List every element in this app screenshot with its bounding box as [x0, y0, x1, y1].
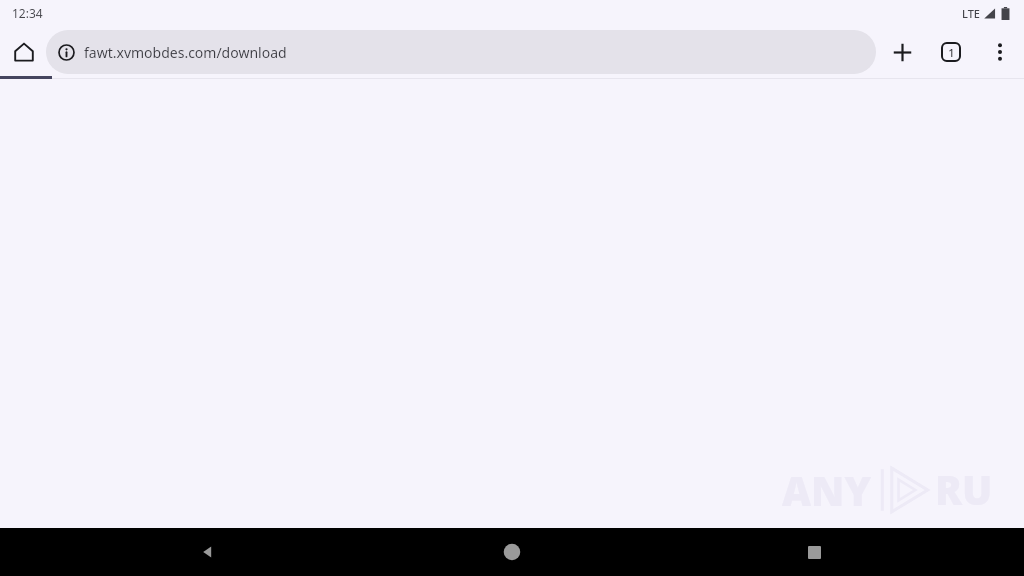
button[interactable]: Home [488, 528, 536, 576]
button[interactable]: More options [980, 32, 1020, 72]
button[interactable]: Recent apps [790, 528, 838, 576]
staticText: RUN [935, 462, 994, 518]
staticText: fawt.xvmobdes.com/download [84, 43, 287, 62]
staticText: 1 [948, 45, 955, 60]
staticText: ANY [782, 463, 871, 517]
staticText: LTE [962, 6, 980, 21]
button[interactable]: Switch tabs, 1 tab open [931, 32, 971, 72]
button[interactable]: Home page [4, 32, 44, 72]
button[interactable]: Back [184, 528, 232, 576]
staticText: 12:34 [12, 5, 43, 21]
button[interactable]: New tab [882, 32, 922, 72]
button[interactable]: fawt.xvmobdes.com/download [46, 30, 876, 74]
